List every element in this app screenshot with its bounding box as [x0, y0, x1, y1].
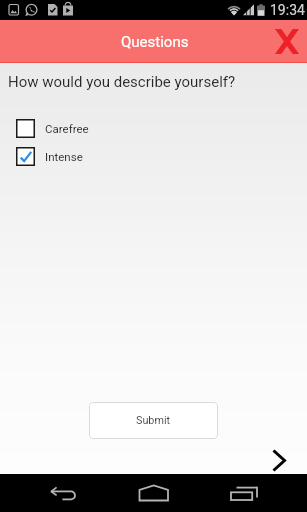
button[interactable]: Intense — [0, 143, 307, 170]
staticText: How would you describe yourself? — [8, 73, 236, 91]
staticText: Submit — [136, 414, 171, 427]
staticText: Intense — [45, 150, 83, 163]
staticText: Questions — [121, 33, 189, 51]
button[interactable]: Close — [270, 24, 304, 58]
staticText: Carefree — [45, 122, 89, 135]
button[interactable]: Carefree — [0, 115, 307, 142]
button[interactable]: Next — [264, 445, 294, 475]
button[interactable]: Submit — [89, 402, 218, 439]
staticText: 19:34 — [270, 2, 305, 18]
